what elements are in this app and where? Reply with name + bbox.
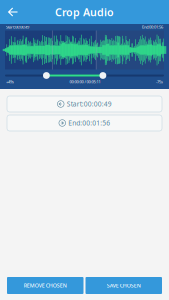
staticText: -75s: [156, 79, 163, 84]
button[interactable]: Start:00:00:49: [7, 96, 162, 112]
staticText: End:00:01:56: [142, 24, 163, 30]
staticText: End:00:01:56: [68, 119, 110, 127]
staticText: SAVE CHOSEN: [107, 282, 141, 289]
staticText: +49s: [6, 79, 14, 84]
staticText: REMOVE CHOSEN: [24, 282, 67, 289]
staticText: Start:00:00:49: [67, 100, 112, 108]
button[interactable]: End:00:01:56: [7, 115, 162, 131]
staticText: 00:00:00 / 00:05:11: [69, 79, 100, 84]
button[interactable]: Back: [0, 0, 26, 24]
button[interactable]: REMOVE CHOSEN: [7, 277, 83, 294]
button[interactable]: SAVE CHOSEN: [85, 277, 162, 294]
staticText: Start:00:00:49: [6, 24, 29, 30]
staticText: Crop Audio: [55, 5, 114, 19]
